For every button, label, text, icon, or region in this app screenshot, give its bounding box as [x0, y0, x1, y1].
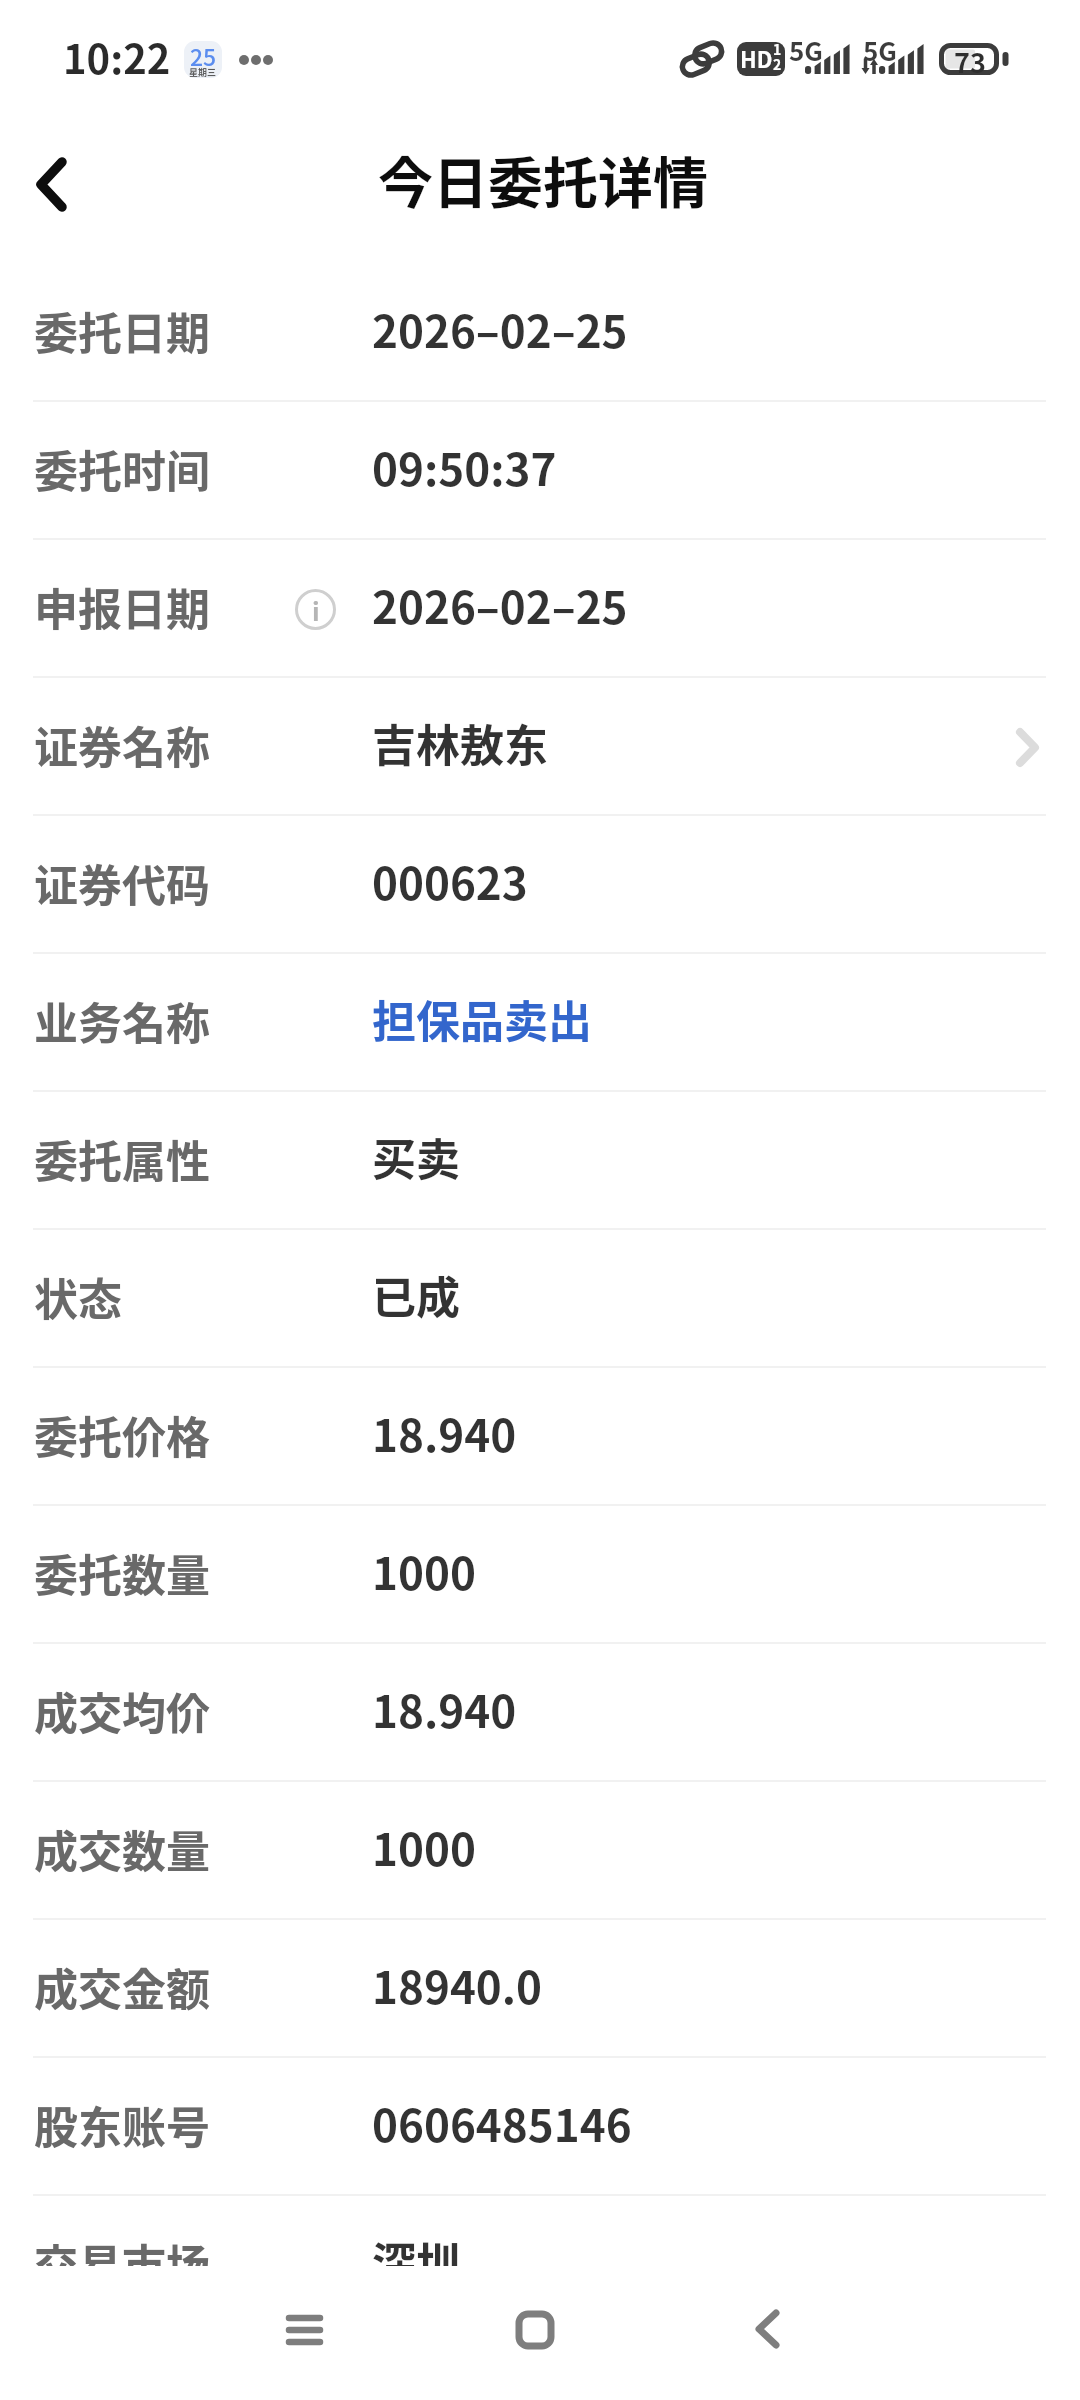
- staticText: 委托数量: [34, 1541, 210, 1605]
- staticText: 73: [954, 42, 986, 74]
- staticText: 交易市场: [34, 2231, 210, 2268]
- staticText: 25: [190, 41, 217, 72]
- button[interactable]: 股东账号: [0, 2058, 1080, 2196]
- staticText: 成交金额: [34, 1955, 210, 2019]
- staticText: 成交数量: [34, 1817, 210, 1881]
- staticText: 吉林敖东: [372, 711, 548, 775]
- staticText: 5G: [863, 31, 897, 67]
- staticText: 0606485146: [372, 2091, 632, 2155]
- staticText: 委托时间: [34, 437, 210, 501]
- staticText: 星期三: [189, 66, 217, 78]
- staticText: 申报日期: [34, 575, 210, 639]
- button[interactable]: 成交数量: [0, 1782, 1080, 1920]
- button[interactable]: 委托日期: [0, 264, 1080, 402]
- staticText: 1000: [372, 1539, 476, 1603]
- staticText: 委托价格: [34, 1403, 210, 1467]
- staticText: 买卖: [372, 1125, 460, 1189]
- staticText: 000623: [372, 849, 528, 913]
- staticText: 业务名称: [34, 989, 210, 1053]
- button[interactable]: 状态: [0, 1230, 1080, 1368]
- staticText: 09:50:37: [372, 435, 557, 499]
- staticText: 证券名称: [34, 713, 210, 777]
- button[interactable]: Recent apps: [244, 2270, 364, 2390]
- staticText: 成交均价: [34, 1679, 210, 1743]
- staticText: 状态: [34, 1265, 122, 1329]
- button[interactable]: 委托数量: [0, 1506, 1080, 1644]
- button[interactable]: 申报日期: [0, 540, 1080, 678]
- button[interactable]: Home: [475, 2270, 595, 2390]
- button[interactable]: 业务名称: [0, 954, 1080, 1092]
- button[interactable]: 证券代码: [0, 816, 1080, 954]
- staticText: 1: [773, 42, 782, 59]
- staticText: 10:22: [63, 28, 171, 86]
- button[interactable]: Back: [0, 124, 111, 244]
- staticText: 2026‒02‒25: [372, 573, 628, 637]
- staticText: 18940.0: [372, 1953, 543, 2017]
- staticText: 已成: [372, 1263, 460, 1327]
- staticText: 委托属性: [34, 1127, 210, 1191]
- staticText: 证券代码: [34, 851, 210, 915]
- staticText: 2026‒02‒25: [372, 297, 628, 361]
- button[interactable]: Back: [707, 2269, 827, 2389]
- staticText: 委托日期: [34, 299, 210, 363]
- staticText: 股东账号: [34, 2093, 210, 2157]
- button[interactable]: 成交金额: [0, 1920, 1080, 2058]
- staticText: 5G: [789, 31, 823, 67]
- staticText: 今日委托详情: [378, 139, 709, 219]
- staticText: HD: [740, 42, 773, 74]
- staticText: 深圳: [372, 2229, 460, 2268]
- staticText: 18.940: [372, 1401, 517, 1465]
- button[interactable]: 证券名称: [0, 678, 1080, 816]
- button[interactable]: 委托时间: [0, 402, 1080, 540]
- button[interactable]: 委托属性: [0, 1092, 1080, 1230]
- staticText: i: [312, 592, 320, 628]
- staticText: 1000: [372, 1815, 476, 1879]
- button[interactable]: 成交均价: [0, 1644, 1080, 1782]
- button[interactable]: 委托价格: [0, 1368, 1080, 1506]
- staticText: 18.940: [372, 1677, 517, 1741]
- staticText: 担保品卖出: [372, 987, 592, 1051]
- staticText: 2: [773, 54, 782, 74]
- button[interactable]: 交易市场: [0, 2196, 1080, 2268]
